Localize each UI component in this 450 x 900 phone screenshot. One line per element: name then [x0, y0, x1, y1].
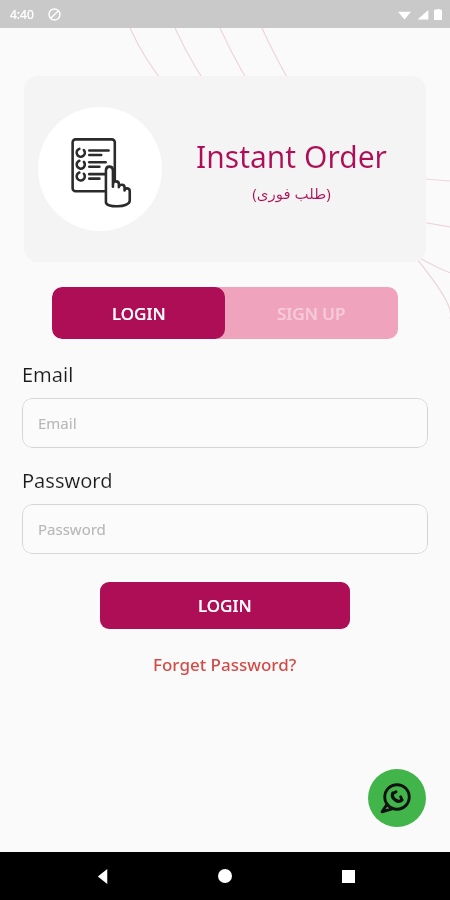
staticText: Password: [38, 519, 106, 539]
staticText: Forget Password?: [153, 653, 297, 676]
button[interactable]: WhatsApp: [368, 769, 426, 827]
button[interactable]: Home: [205, 856, 245, 896]
button[interactable]: SIGN UP: [225, 287, 398, 339]
staticText: LOGIN: [198, 594, 252, 617]
staticText: (طلب فوری): [252, 183, 331, 203]
staticText: Password: [22, 467, 113, 494]
button[interactable]: Back: [83, 856, 123, 896]
button[interactable]: LOGIN: [100, 582, 350, 629]
staticText: 4:40: [10, 6, 34, 22]
button[interactable]: LOGIN: [52, 287, 225, 339]
button[interactable]: Forget Password?: [145, 651, 305, 678]
button[interactable]: Password: [22, 504, 428, 554]
staticText: LOGIN: [112, 302, 166, 325]
button[interactable]: Email: [22, 398, 428, 448]
staticText: SIGN UP: [277, 302, 346, 325]
staticText: Email: [38, 413, 77, 433]
staticText: Instant Order: [196, 136, 387, 177]
staticText: Email: [22, 361, 74, 388]
button[interactable]: Recent apps: [328, 856, 368, 896]
